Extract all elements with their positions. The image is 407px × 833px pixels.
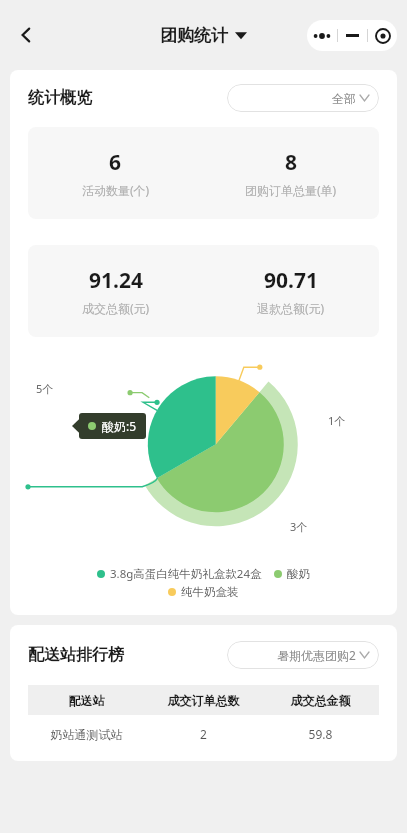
staticText: 59.8 (262, 726, 379, 742)
staticText: 酸奶 (287, 567, 310, 581)
staticText: 91.24 (89, 266, 143, 295)
staticText: 1个 (328, 413, 346, 428)
button[interactable]: 全部 (227, 84, 379, 112)
staticText: 2 (145, 726, 262, 742)
staticText: 退款总额(元) (257, 300, 325, 316)
button[interactable]: Back (6, 15, 46, 55)
staticText: 团购订单总量(单) (245, 182, 337, 198)
staticText: 3个 (290, 519, 308, 534)
staticText: 成交总额(元) (82, 300, 150, 316)
button[interactable]: Minimize (338, 20, 367, 51)
button[interactable]: 奶站通测试站 (28, 715, 379, 753)
button[interactable]: 暑期优惠团购2 (227, 641, 379, 669)
staticText: 活动数量(个) (82, 182, 150, 198)
staticText: 成交总金额 (262, 693, 379, 708)
staticText: 配送站排行榜 (28, 645, 124, 665)
staticText: 纯牛奶盒装 (181, 585, 239, 599)
button[interactable]: More options (307, 20, 337, 51)
staticText: 配送站 (28, 693, 145, 708)
staticText: 酸奶:5 (102, 418, 137, 434)
staticText: 团购统计 (160, 25, 228, 46)
staticText: 奶站通测试站 (28, 727, 145, 742)
staticText: 统计概览 (28, 88, 92, 108)
staticText: 暑期优惠团购2 (277, 647, 356, 663)
staticText: 90.71 (264, 266, 318, 295)
button[interactable]: 团购统计 (160, 25, 247, 46)
staticText: 3.8g高蛋白纯牛奶礼盒款24盒 (110, 566, 262, 582)
staticText: 8 (285, 148, 298, 177)
staticText: 6 (109, 148, 122, 177)
button[interactable]: Close (368, 20, 397, 51)
staticText: 5个 (36, 381, 54, 396)
staticText: 全部 (332, 91, 356, 106)
staticText: 成交订单总数 (145, 693, 262, 708)
